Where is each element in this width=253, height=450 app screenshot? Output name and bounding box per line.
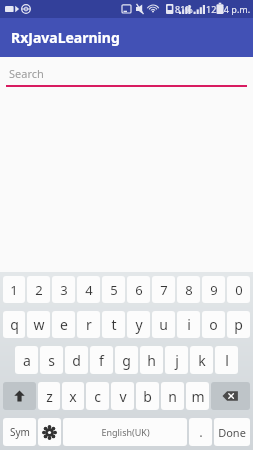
staticText: Sym	[10, 425, 30, 439]
button[interactable]: h	[140, 346, 163, 374]
button[interactable]: v	[111, 382, 134, 410]
staticText: o	[209, 315, 218, 334]
staticText: f	[99, 351, 104, 370]
staticText: English(UK)	[101, 426, 150, 438]
button[interactable]: 4	[77, 276, 100, 303]
staticText: 4	[85, 281, 93, 299]
button[interactable]: x	[62, 382, 84, 410]
staticText: b	[143, 387, 152, 406]
button[interactable]: Search	[0, 57, 253, 87]
staticText: m	[191, 387, 205, 406]
staticText: v	[119, 387, 127, 406]
button[interactable]: 3	[52, 276, 75, 303]
staticText: q	[10, 315, 19, 334]
button[interactable]: z	[38, 382, 60, 410]
button[interactable]: e	[52, 311, 75, 338]
button[interactable]: 1	[3, 276, 25, 303]
button[interactable]: n	[161, 382, 184, 410]
button[interactable]: a	[15, 346, 38, 374]
button[interactable]: i	[177, 311, 200, 338]
staticText: 9	[210, 281, 218, 299]
button[interactable]: .	[189, 418, 212, 446]
button[interactable]: m	[186, 382, 209, 410]
staticText: 6	[135, 281, 143, 299]
staticText: 3	[60, 281, 68, 299]
button[interactable]: Backspace	[211, 382, 250, 410]
button[interactable]: y	[127, 311, 150, 338]
button[interactable]: 5	[102, 276, 125, 303]
button[interactable]: Done	[214, 418, 250, 446]
staticText: Search	[9, 66, 44, 81]
button[interactable]: o	[202, 311, 225, 338]
staticText: n	[168, 387, 177, 406]
button[interactable]: f	[90, 346, 113, 374]
button[interactable]: g	[115, 346, 138, 374]
button[interactable]: d	[65, 346, 88, 374]
staticText: .	[199, 423, 203, 441]
button[interactable]: 2	[27, 276, 50, 303]
button[interactable]: p	[227, 311, 250, 338]
staticText: 7	[160, 281, 168, 299]
staticText: w	[33, 315, 45, 334]
button[interactable]: Shift	[3, 382, 36, 410]
button[interactable]: k	[190, 346, 213, 374]
button[interactable]: Sym	[3, 418, 36, 446]
staticText: 8	[185, 281, 193, 299]
staticText: g	[122, 351, 131, 370]
button[interactable]: u	[152, 311, 175, 338]
staticText: t	[111, 315, 117, 334]
staticText: p	[234, 315, 243, 334]
staticText: l	[225, 351, 229, 370]
staticText: r	[86, 315, 92, 334]
staticText: h	[147, 351, 156, 370]
button[interactable]: l	[215, 346, 238, 374]
staticText: Done	[218, 425, 246, 440]
button[interactable]: 8	[177, 276, 200, 303]
staticText: 0	[235, 281, 243, 299]
staticText: c	[94, 387, 101, 406]
staticText: 5	[110, 281, 118, 299]
staticText: x	[69, 387, 77, 406]
staticText: d	[72, 351, 81, 370]
button[interactable]: 9	[202, 276, 225, 303]
button[interactable]: r	[77, 311, 100, 338]
button[interactable]: English(UK)	[63, 418, 187, 446]
button[interactable]: w	[27, 311, 50, 338]
button[interactable]: q	[3, 311, 25, 338]
staticText: a	[23, 351, 31, 370]
staticText: i	[187, 315, 191, 334]
staticText: RxJavaLearning	[11, 28, 120, 47]
button[interactable]: 6	[127, 276, 150, 303]
staticText: 1	[10, 281, 18, 299]
button[interactable]: s	[40, 346, 63, 374]
staticText: z	[46, 387, 53, 406]
staticText: k	[198, 351, 206, 370]
button[interactable]: c	[86, 382, 109, 410]
staticText: 81%	[175, 3, 193, 15]
staticText: 12:24 p.m.	[206, 3, 251, 15]
staticText: s	[48, 351, 55, 370]
button[interactable]: Keyboard settings	[38, 418, 61, 446]
staticText: 2	[35, 281, 43, 299]
button[interactable]: j	[165, 346, 188, 374]
button[interactable]: b	[136, 382, 159, 410]
button[interactable]: 7	[152, 276, 175, 303]
button[interactable]: t	[102, 311, 125, 338]
staticText: y	[135, 315, 143, 334]
staticText: u	[159, 315, 168, 334]
staticText: e	[60, 315, 68, 334]
button[interactable]: 0	[227, 276, 250, 303]
staticText: j	[175, 351, 179, 370]
